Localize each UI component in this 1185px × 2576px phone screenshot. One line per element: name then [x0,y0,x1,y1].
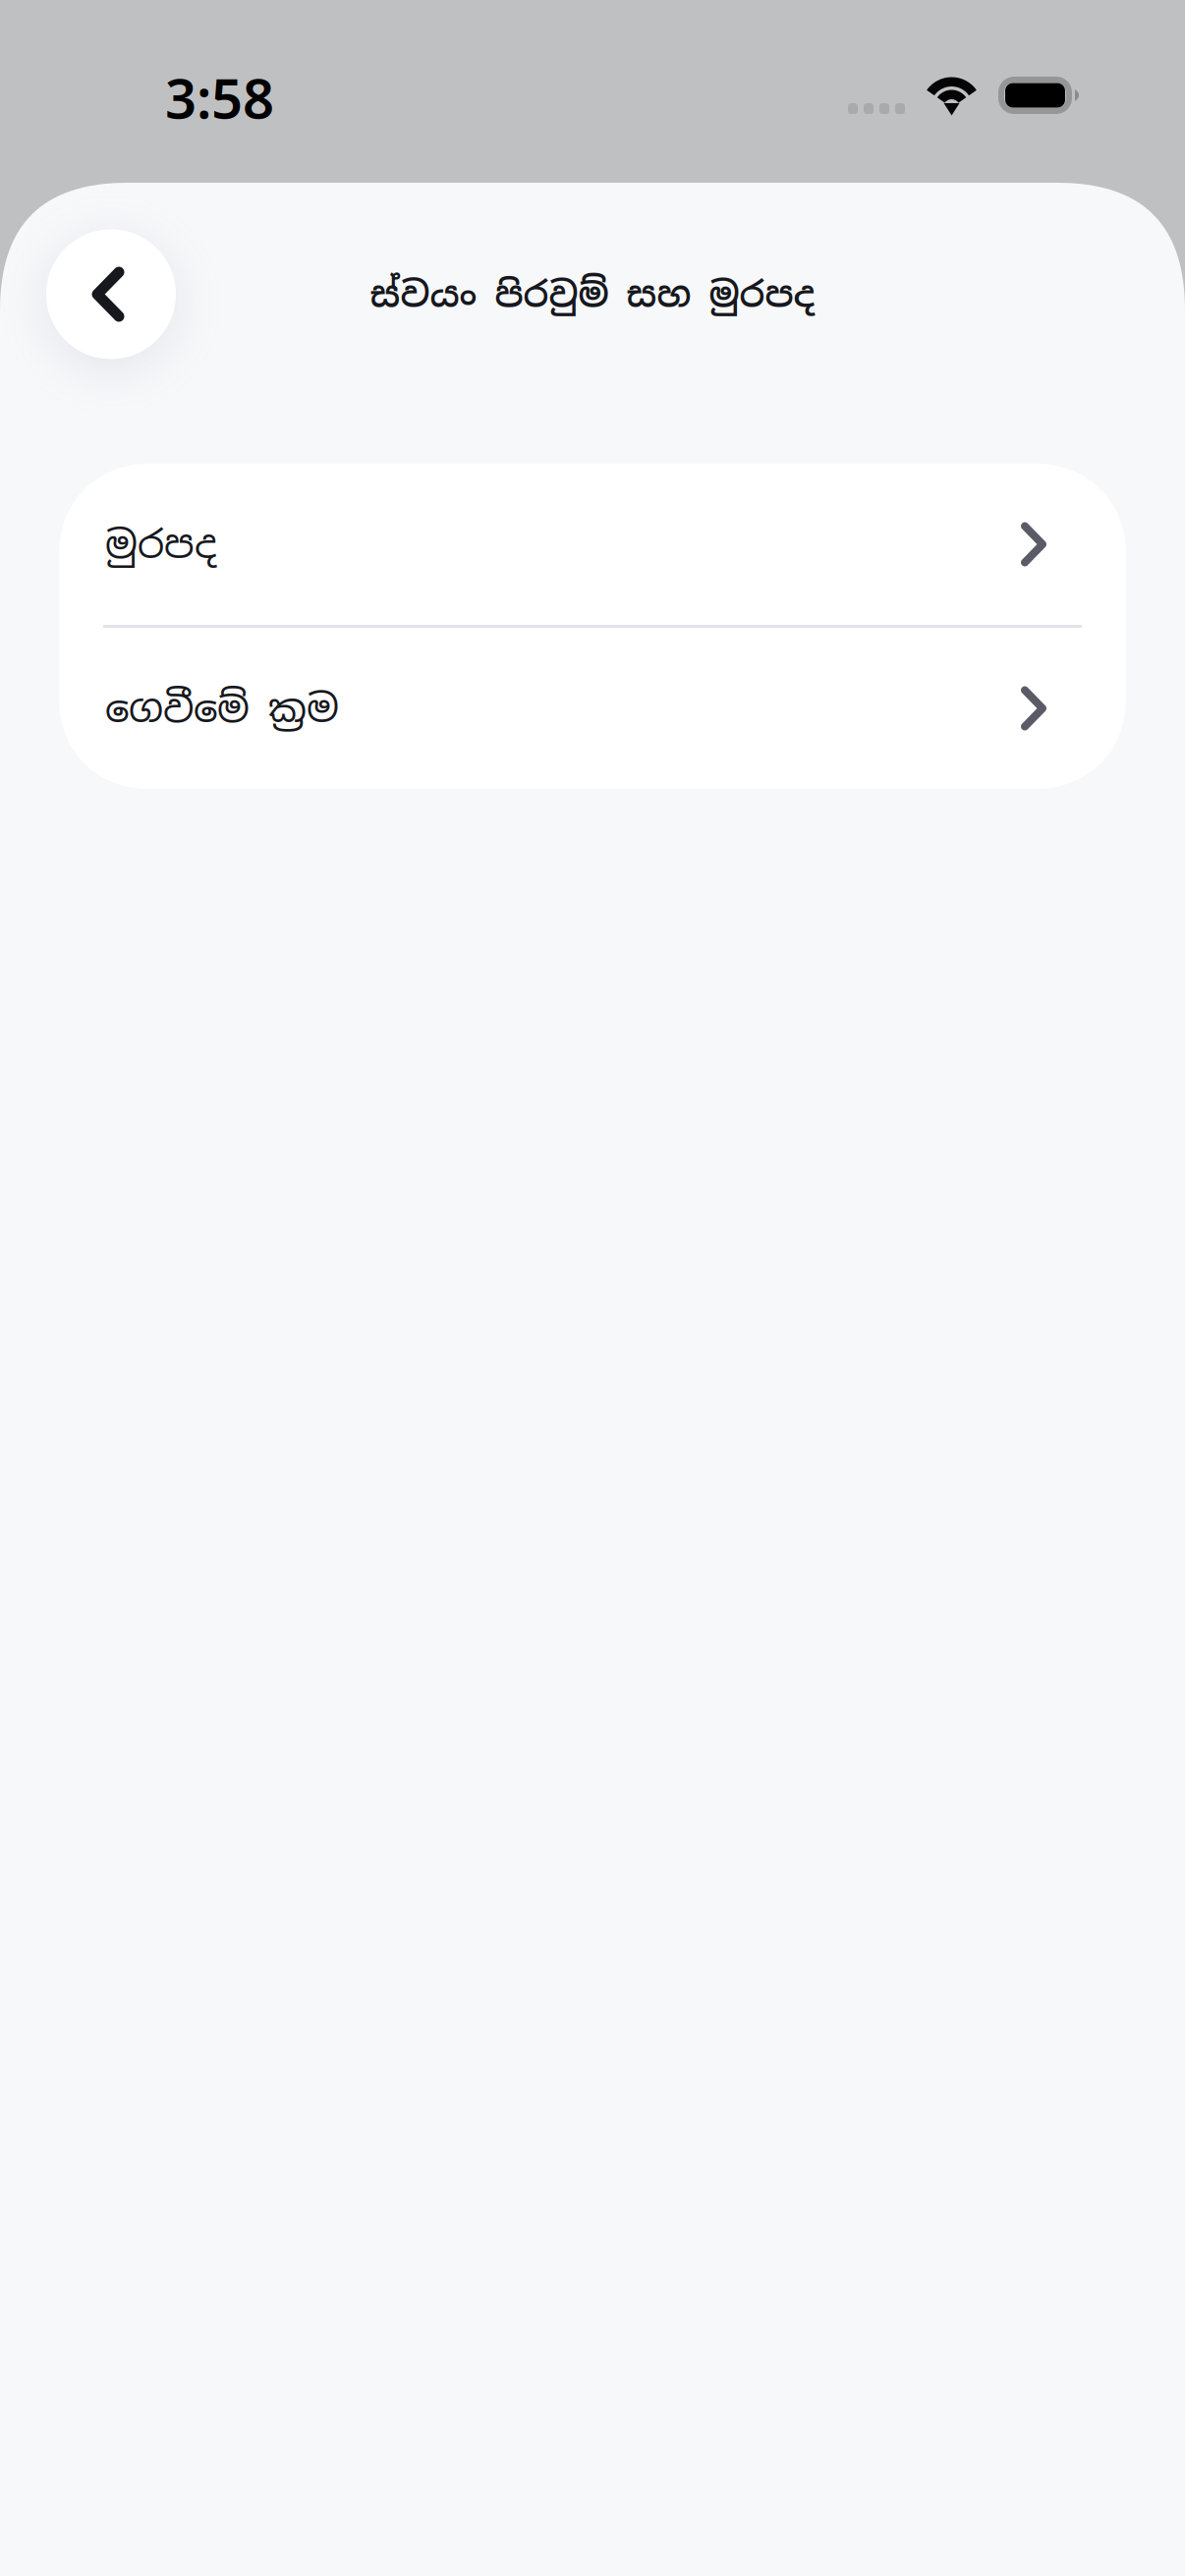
staticText: 3:58 [165,61,274,134]
staticText: ස්වයං පිරවුම් සහ මුරපද [370,271,815,317]
button[interactable]: Back [46,229,176,359]
button[interactable]: ගෙවීමේ ක්‍රම [59,628,1126,789]
button[interactable]: මුරපද [59,464,1126,625]
staticText: මුරපද [105,520,216,569]
staticText: ගෙවීමේ ක්‍රම [105,684,339,733]
